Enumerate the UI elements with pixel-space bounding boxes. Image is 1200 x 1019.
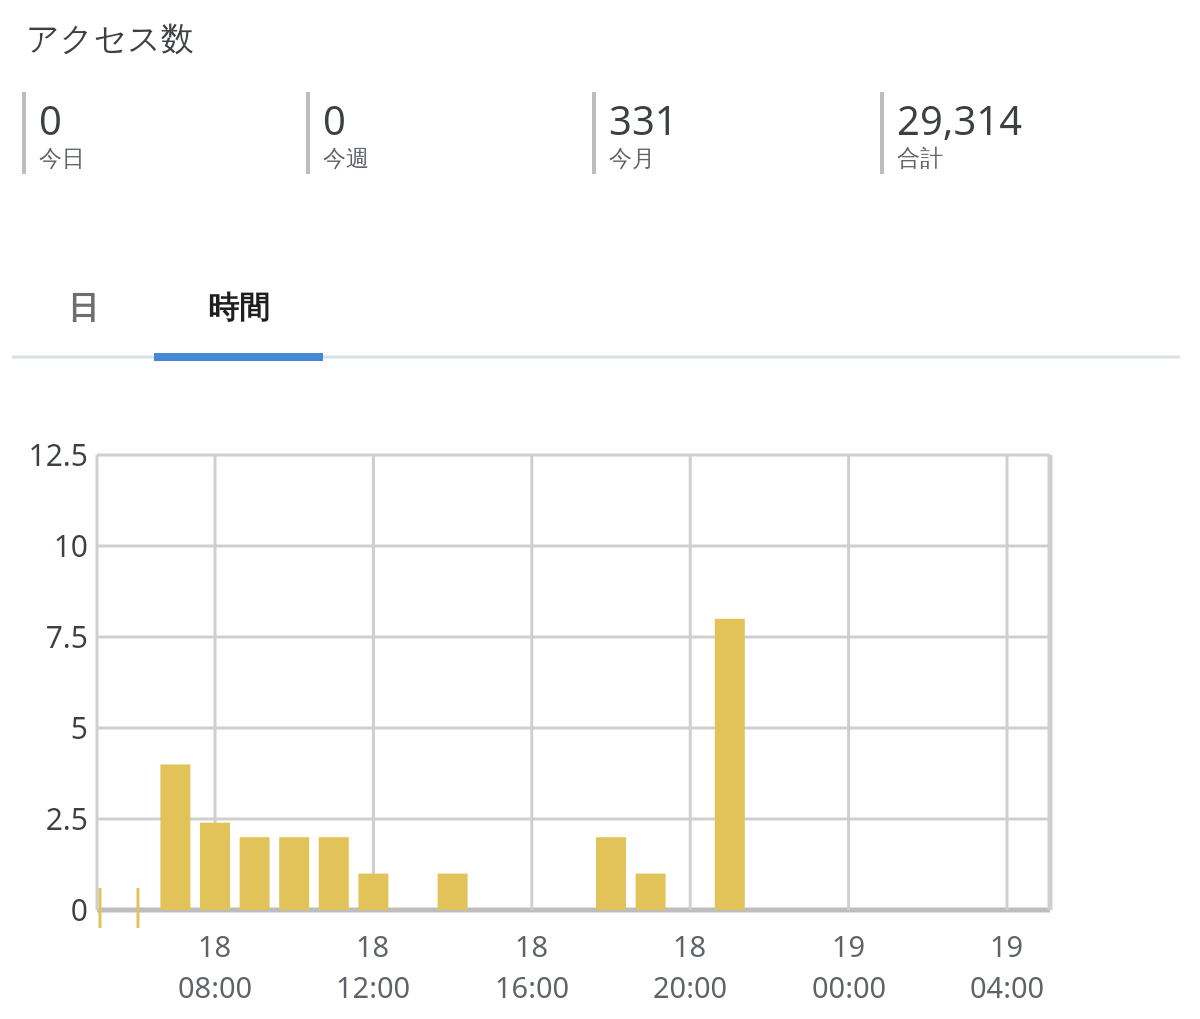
staticText: 日	[68, 288, 99, 327]
staticText: 2.5	[8, 798, 88, 839]
staticText: 5	[8, 707, 88, 748]
staticText: 20:00	[653, 967, 728, 1006]
button[interactable]: 331	[592, 92, 872, 178]
staticText: 0	[323, 92, 346, 146]
button[interactable]: 時間	[154, 262, 323, 352]
staticText: 29,314	[897, 92, 1023, 146]
staticText: 18	[515, 926, 549, 965]
staticText: 00:00	[812, 967, 887, 1006]
staticText: 18	[673, 926, 707, 965]
staticText: 今日	[39, 144, 85, 173]
staticText: 合計	[897, 144, 943, 173]
staticText: 12.5	[8, 434, 88, 475]
staticText: 10	[8, 525, 88, 566]
staticText: 今週	[323, 144, 369, 173]
staticText: アクセス数	[26, 18, 195, 60]
button[interactable]: 日	[12, 262, 154, 352]
staticText: 今月	[609, 144, 655, 173]
staticText: 19	[990, 926, 1024, 965]
staticText: 18	[198, 926, 232, 965]
button[interactable]: 0	[22, 92, 302, 178]
staticText: 04:00	[970, 967, 1045, 1006]
staticText: 18	[356, 926, 390, 965]
staticText: 7.5	[8, 616, 88, 657]
staticText: 08:00	[178, 967, 253, 1006]
staticText: 12:00	[336, 967, 411, 1006]
staticText: 0	[39, 92, 62, 146]
staticText: 19	[832, 926, 866, 965]
staticText: 16:00	[495, 967, 570, 1006]
staticText: 0	[8, 889, 88, 930]
button[interactable]: 0	[306, 92, 586, 178]
staticText: 331	[609, 92, 678, 146]
staticText: 時間	[208, 288, 270, 327]
button[interactable]: 29,314	[880, 92, 1160, 178]
